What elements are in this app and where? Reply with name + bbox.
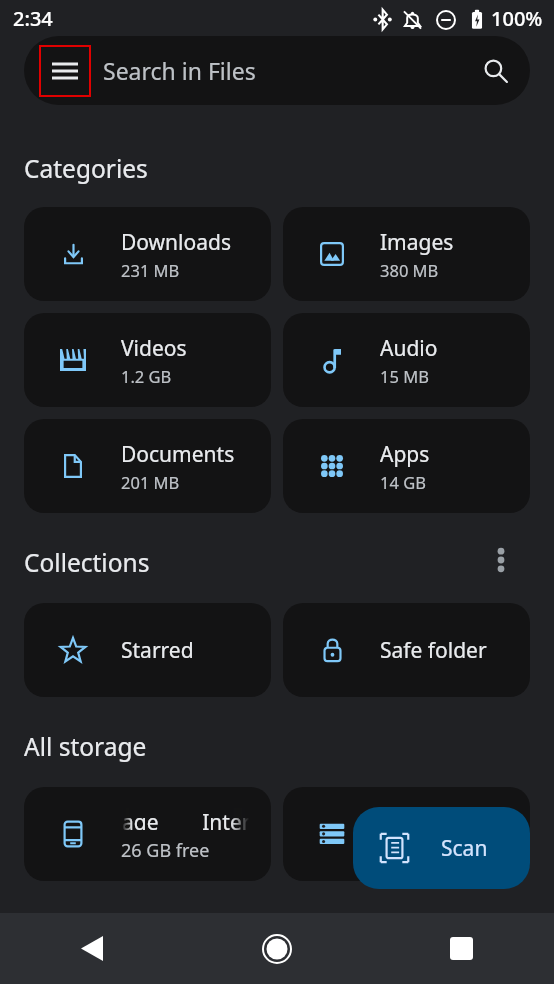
button[interactable]: Safe folder xyxy=(283,603,530,697)
button[interactable]: Open navigation drawer xyxy=(24,36,530,105)
button[interactable]: age Internal storage xyxy=(24,787,271,881)
staticText: Collections xyxy=(24,546,150,579)
staticText: 14 GB xyxy=(380,471,426,493)
button[interactable]: Scan xyxy=(353,807,530,889)
staticText: Safe folder xyxy=(380,636,487,665)
staticText: 380 MB xyxy=(380,259,439,281)
button[interactable]: More options xyxy=(481,540,521,580)
staticText: All storage xyxy=(24,730,147,763)
staticText: 26 GB free xyxy=(121,838,210,863)
button[interactable]: Audio xyxy=(283,313,530,407)
staticText: 100% xyxy=(491,5,543,32)
button[interactable]: Apps xyxy=(283,419,530,513)
button[interactable]: Documents xyxy=(24,419,271,513)
staticText: 2:34 xyxy=(13,5,53,32)
staticText: Scan xyxy=(441,834,488,863)
staticText: Apps xyxy=(380,440,430,469)
staticText: Audio xyxy=(380,334,438,363)
staticText: 231 MB xyxy=(121,259,180,281)
staticText: age Internal storage xyxy=(122,808,249,830)
staticText: 201 MB xyxy=(121,471,180,493)
staticText: Search in Files xyxy=(103,55,256,86)
staticText: Videos xyxy=(121,334,187,363)
staticText: Starred xyxy=(121,636,194,665)
staticText: Images xyxy=(380,228,454,257)
button[interactable]: Images xyxy=(283,207,530,301)
staticText: 15 MB xyxy=(380,365,429,387)
staticText: Categories xyxy=(24,152,148,185)
button[interactable]: Starred xyxy=(24,603,271,697)
button[interactable] xyxy=(283,787,530,881)
button[interactable]: Search xyxy=(474,49,518,93)
button[interactable]: Downloads xyxy=(24,207,271,301)
button[interactable]: Videos xyxy=(24,313,271,407)
staticText: Documents xyxy=(121,440,235,469)
button[interactable]: Back xyxy=(0,913,184,984)
button[interactable]: Home xyxy=(184,913,369,984)
button[interactable]: Open navigation drawer xyxy=(40,46,90,96)
staticText: 1.2 GB xyxy=(121,365,172,387)
button[interactable]: Recent apps xyxy=(369,913,554,984)
staticText: Downloads xyxy=(121,228,231,257)
